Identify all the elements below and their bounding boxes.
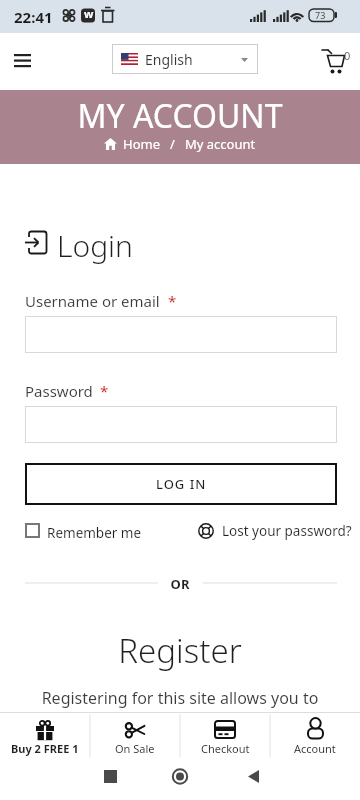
staticText: On Sale [115, 741, 155, 756]
button[interactable] [25, 316, 337, 353]
button[interactable] [25, 406, 337, 443]
staticText: Remember me [47, 524, 142, 542]
button[interactable]: LOG IN [25, 463, 337, 505]
staticText: Lost your password? [222, 522, 352, 540]
button[interactable]: Checkout [180, 712, 270, 757]
staticText: LOG IN [156, 475, 207, 493]
staticText: 73 [315, 9, 326, 21]
staticText: Registering for this site allows you to [0, 687, 360, 709]
button[interactable] [6, 47, 38, 75]
button[interactable]: Account [270, 712, 360, 757]
staticText: MY ACCOUNT [0, 94, 360, 138]
staticText: w [84, 6, 94, 21]
button[interactable]: On Sale [90, 712, 180, 757]
staticText: English [145, 50, 193, 69]
staticText: Password [25, 381, 97, 401]
staticText: / [170, 135, 175, 153]
staticText: access your order status and history. [0, 710, 360, 732]
button[interactable]: Buy 2 FREE 1 [0, 712, 90, 757]
staticText: Login [57, 225, 133, 266]
staticText: Account [294, 741, 336, 756]
staticText: Checkout [201, 741, 250, 756]
button[interactable]: 0 [314, 43, 358, 83]
staticText: My account [185, 135, 256, 153]
button[interactable]: Lost your password? [198, 520, 340, 540]
button[interactable]: Home [123, 135, 160, 153]
staticText: 0 [344, 48, 351, 63]
staticText: Buy 2 FREE 1 [11, 741, 79, 756]
button[interactable]: English [112, 44, 258, 74]
staticText: Register [0, 628, 360, 673]
staticText: * [100, 381, 109, 401]
staticText: 22:41 [14, 7, 53, 27]
button[interactable] [25, 523, 40, 538]
staticText: OR [168, 575, 192, 593]
staticText: Username or email [25, 291, 164, 311]
staticText: * [168, 291, 177, 311]
